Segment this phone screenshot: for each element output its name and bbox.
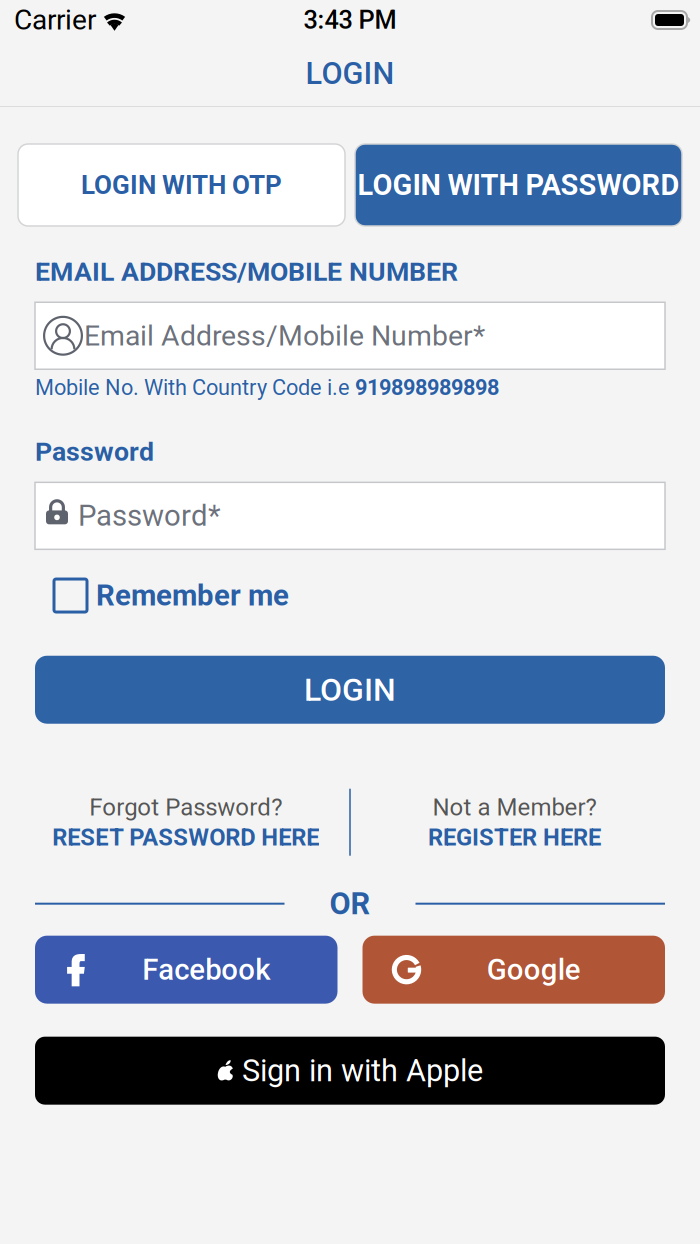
- staticText: Email Address/Mobile Number*: [84, 319, 485, 352]
- staticText: Remember me: [96, 578, 289, 613]
- staticText: LOGIN: [304, 671, 396, 708]
- staticText: Mobile No. With Country Code i.e 9198989…: [35, 375, 499, 400]
- button[interactable]: Google: [362, 936, 665, 1004]
- staticText: OR: [329, 886, 370, 922]
- button[interactable]: LOGIN WITH PASSWORD: [355, 144, 682, 226]
- button[interactable]: LOGIN: [0, 613, 700, 724]
- button[interactable]: LOGIN WITH OTP: [18, 144, 345, 226]
- button[interactable]: Sign in with Apple: [0, 1004, 700, 1105]
- staticText: EMAIL ADDRESS/MOBILE NUMBER: [35, 256, 458, 287]
- staticText: Google: [487, 952, 581, 987]
- staticText: 3:43 PM: [303, 5, 396, 35]
- staticText: Password: [35, 436, 154, 467]
- button[interactable]: Not a Member?: [351, 793, 678, 851]
- staticText: Password*: [78, 499, 221, 533]
- staticText: RESET PASSWORD HERE: [52, 823, 319, 851]
- staticText: REGISTER HERE: [428, 823, 601, 851]
- button[interactable]: Forgot Password?: [22, 793, 349, 851]
- staticText: LOGIN: [305, 55, 394, 91]
- staticText: Sign in with Apple: [242, 1053, 483, 1089]
- staticText: Facebook: [142, 952, 270, 987]
- staticText: Carrier: [14, 4, 96, 36]
- button[interactable]: Remember me: [0, 549, 700, 613]
- staticText: Not a Member?: [432, 793, 596, 821]
- staticText: LOGIN WITH OTP: [81, 170, 282, 200]
- staticText: LOGIN WITH PASSWORD: [357, 168, 679, 202]
- staticText: Forgot Password?: [89, 793, 282, 821]
- button[interactable]: Facebook: [35, 936, 337, 1004]
